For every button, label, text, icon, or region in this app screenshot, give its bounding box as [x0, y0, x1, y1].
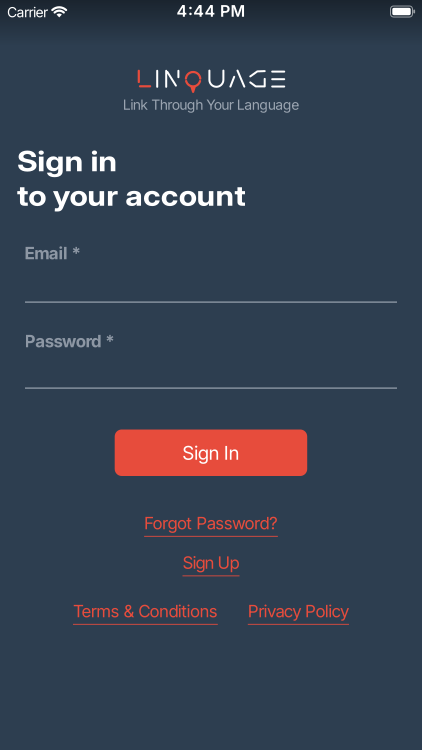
button[interactable]: Sign In	[115, 429, 307, 476]
staticText: Sign Up	[182, 552, 239, 573]
button[interactable]: Forgot Password?	[144, 513, 278, 533]
button[interactable]: Sign Up	[182, 552, 239, 573]
staticText: Privacy Policy	[248, 601, 349, 621]
staticText: Terms & Conditions	[73, 601, 218, 621]
staticText: Sign In	[182, 441, 239, 464]
staticText: Password *	[24, 331, 114, 351]
button[interactable]: Terms & Conditions	[73, 601, 218, 621]
staticText: Carrier	[7, 4, 48, 20]
staticText: 4:44 PM	[177, 1, 245, 20]
staticText: Email *	[24, 243, 80, 263]
staticText: Link Through Your Language	[123, 96, 299, 113]
button[interactable]: Privacy Policy	[248, 601, 349, 621]
staticText: to your account	[17, 179, 222, 212]
staticText: Sign in	[17, 144, 106, 177]
staticText: Forgot Password?	[144, 513, 278, 533]
